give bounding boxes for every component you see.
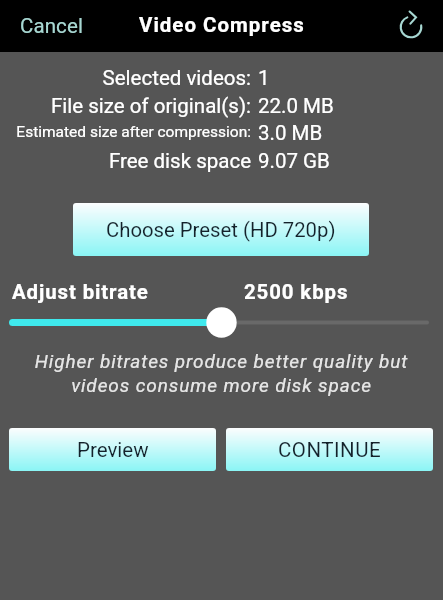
staticText: 3.0 MB — [258, 121, 323, 145]
staticText: Video Compress — [139, 13, 305, 37]
button[interactable]: Preview — [9, 428, 216, 471]
staticText: Higher bitrates produce better quality b… — [0, 350, 443, 397]
staticText: Cancel — [20, 14, 84, 38]
staticText: 22.0 MB — [258, 94, 334, 118]
button[interactable]: CONTINUE — [226, 428, 433, 471]
staticText: Adjust bitrate — [12, 280, 149, 304]
button[interactable]: Refresh — [394, 10, 428, 44]
staticText: Choose Preset (HD 720p) — [106, 218, 336, 242]
staticText: Preview — [77, 438, 149, 462]
staticText: CONTINUE — [278, 438, 382, 462]
button[interactable]: Cancel — [12, 6, 92, 46]
staticText: Selected videos: — [102, 66, 251, 90]
button[interactable]: Choose Preset (HD 720p) — [73, 203, 369, 256]
staticText: 9.07 GB — [258, 149, 330, 173]
staticText: Free disk space — [108, 149, 251, 173]
staticText: 2500 kbps — [244, 280, 349, 304]
staticText: Estimated size after compression: — [16, 123, 251, 141]
staticText: File size of original(s): — [51, 94, 251, 118]
staticText: 1 — [258, 66, 270, 90]
button[interactable]: Bitrate slider — [0, 305, 443, 339]
